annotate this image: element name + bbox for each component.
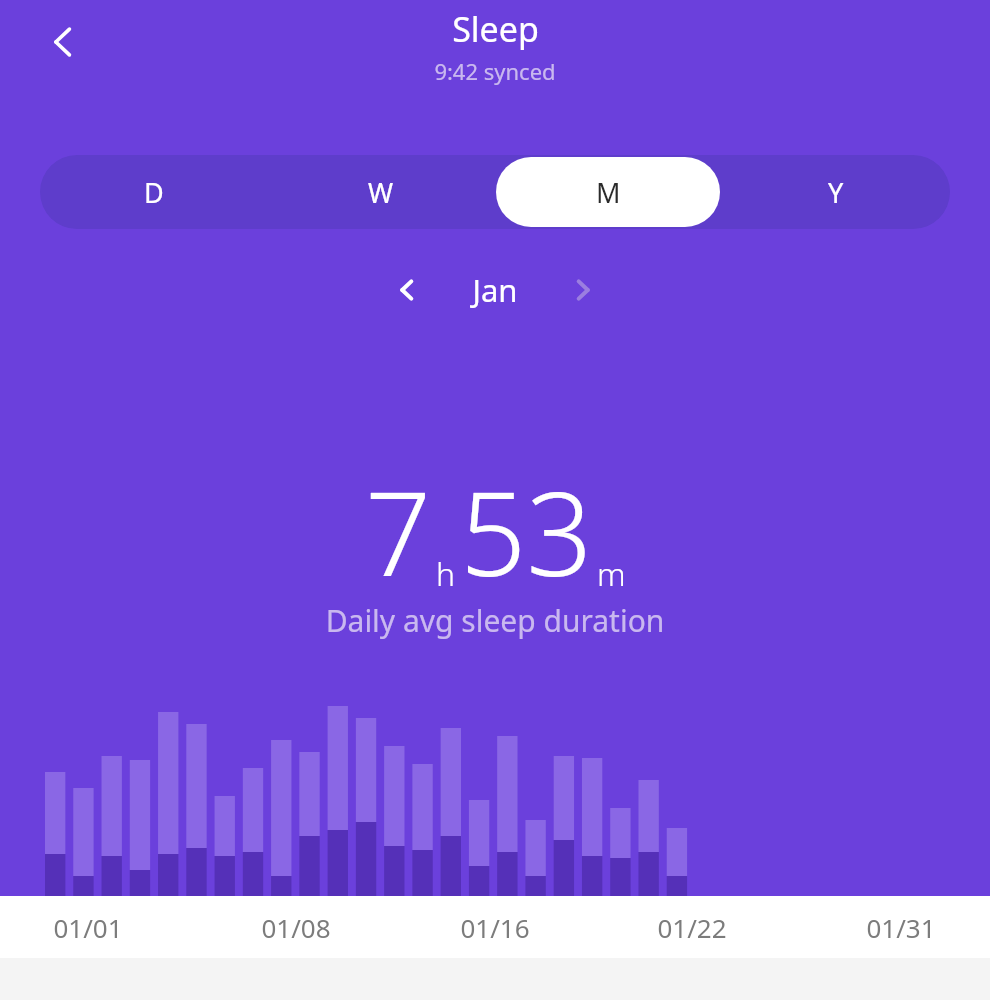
- staticText: 01/31: [851, 910, 951, 945]
- staticText: 53: [460, 452, 593, 610]
- button[interactable]: Next month: [555, 262, 611, 318]
- staticText: Sleep: [452, 6, 539, 52]
- button[interactable]: Y: [724, 157, 948, 227]
- staticText: Jan: [472, 269, 518, 311]
- staticText: m: [597, 552, 626, 596]
- staticText: 01/01: [38, 910, 138, 945]
- button[interactable]: Jan: [435, 269, 555, 311]
- button[interactable]: W: [269, 157, 492, 227]
- staticText: h: [436, 552, 456, 596]
- button[interactable]: M: [496, 157, 720, 227]
- staticText: 01/16: [445, 910, 545, 945]
- staticText: W: [368, 174, 394, 211]
- staticText: 9:42 synced: [434, 56, 556, 86]
- button[interactable]: D: [42, 157, 265, 227]
- staticText: 7: [365, 452, 432, 610]
- staticText: Y: [828, 174, 844, 211]
- staticText: 01/22: [642, 910, 742, 945]
- button[interactable]: Back: [38, 16, 90, 68]
- staticText: D: [144, 174, 164, 211]
- staticText: Daily avg sleep duration: [0, 600, 990, 641]
- button[interactable]: Previous month: [379, 262, 435, 318]
- staticText: M: [596, 174, 621, 211]
- staticText: 01/08: [246, 910, 346, 945]
